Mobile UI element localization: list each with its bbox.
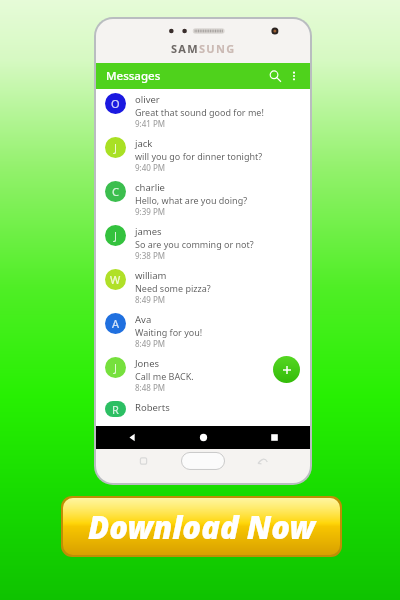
staticText: 8:49 PM (135, 294, 166, 305)
staticText: oliver (135, 93, 160, 106)
staticText: Waiting for you! (135, 326, 203, 338)
button[interactable]: Recent apps (239, 426, 310, 449)
button[interactable]: O (96, 89, 310, 133)
staticText: 8:49 PM (135, 338, 166, 349)
staticText: Great that sound good for me! (135, 106, 264, 118)
staticText: william (135, 269, 167, 282)
staticText: J (114, 360, 118, 375)
button[interactable]: A (96, 309, 310, 353)
staticText: Jones (135, 357, 160, 370)
button[interactable]: Download Now (63, 498, 340, 555)
button[interactable]: R (96, 397, 310, 417)
button[interactable]: Home (168, 426, 239, 449)
staticText: SUNG (199, 41, 236, 56)
staticText: J (114, 228, 118, 243)
button[interactable]: C (96, 177, 310, 221)
staticText: C (112, 184, 119, 199)
staticText: So are you comming or not? (135, 238, 254, 250)
button[interactable]: W (96, 265, 310, 309)
staticText: Need some pizza? (135, 282, 211, 294)
staticText: A (112, 316, 120, 331)
staticText: Ava (135, 313, 152, 326)
staticText: Hello, what are you doing? (135, 194, 248, 206)
button[interactable]: New message (273, 356, 300, 383)
staticText: jack (135, 137, 153, 150)
staticText: O (111, 96, 120, 111)
staticText: 9:40 PM (135, 162, 166, 173)
button[interactable]: J (96, 353, 310, 397)
staticText: R (112, 402, 119, 417)
staticText: W (110, 272, 121, 287)
button[interactable]: More options (285, 67, 303, 85)
button[interactable]: Search (265, 66, 285, 86)
button[interactable]: J (96, 133, 310, 177)
staticText: 8:48 PM (135, 382, 166, 393)
staticText: Call me BACK. (135, 370, 194, 382)
staticText: james (135, 225, 162, 238)
staticText: 9:38 PM (135, 250, 166, 261)
staticText: Download Now (88, 506, 315, 548)
staticText: J (114, 140, 118, 155)
staticText: Roberts (135, 401, 170, 414)
staticText: SAM (171, 41, 199, 56)
staticText: 9:39 PM (135, 206, 166, 217)
staticText: charlie (135, 181, 165, 194)
button[interactable]: J (96, 221, 310, 265)
staticText: will you go for dinner tonight? (135, 150, 263, 162)
staticText: 9:41 PM (135, 118, 166, 129)
staticText: Messages (106, 68, 161, 84)
button[interactable]: Back (96, 426, 168, 449)
